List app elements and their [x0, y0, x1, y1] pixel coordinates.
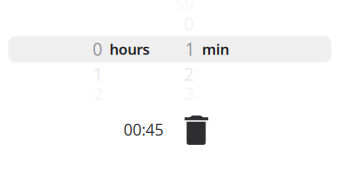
staticText: 3 [185, 83, 194, 104]
button[interactable]: Delete timer [179, 109, 214, 151]
staticText: 2 [94, 83, 103, 104]
staticText: 59 [176, 0, 194, 15]
staticText: min [202, 39, 229, 59]
staticText: 0 [184, 12, 194, 35]
staticText: 00:45 [123, 119, 163, 140]
staticText: hours [109, 39, 149, 59]
staticText: 2 [184, 62, 194, 85]
staticText: 1 [93, 62, 103, 85]
staticText: 1 [185, 37, 195, 60]
staticText: 0 [92, 37, 102, 60]
